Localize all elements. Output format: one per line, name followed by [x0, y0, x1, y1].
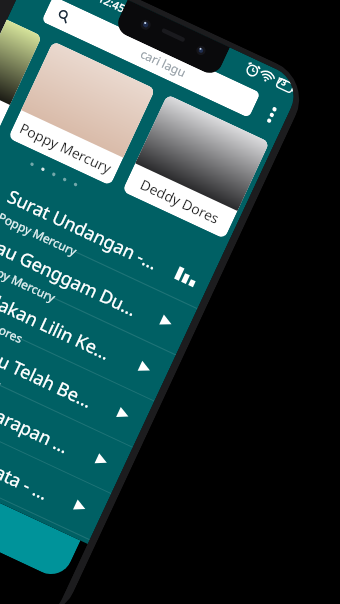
- button[interactable]: Kau Genggam Dunia - Poppy Mercury: [0, 184, 198, 354]
- staticText: cari lagu: [138, 45, 189, 80]
- button[interactable]: Hilang Permata - Deddy Dores: [0, 368, 111, 539]
- button[interactable]: Deddy Dores: [122, 94, 270, 239]
- button[interactable]: Surat Undangan - Poppy Mercury: [0, 137, 219, 308]
- staticText: Kau Genggam Dunia - Poppy Mercury: [0, 230, 142, 323]
- staticText: Sebuah Harapan - Deddy Dores: [0, 369, 77, 461]
- staticText: Poppy Mercury: [17, 118, 115, 178]
- staticText: Hilang Permata - Deddy Dores: [0, 415, 56, 507]
- button[interactable]: Iwan Fals: [0, 19, 42, 133]
- staticText: Poppy Mercury: [0, 208, 80, 259]
- staticText: Deddy Dores: [0, 347, 4, 392]
- staticText: Poppy Mercury: [0, 255, 58, 305]
- button[interactable]: 00:03 /: [0, 419, 81, 581]
- staticText: Surat Undangan - Poppy Mercury: [3, 184, 164, 276]
- staticText: 12:45: [96, 0, 128, 16]
- staticText: Cintamu Telah Berlalu - Deddy Dores: [0, 323, 99, 415]
- staticText: Deddy Dores: [0, 301, 26, 346]
- staticText: Nyalakan Lilin Kecil - Deddy Dores: [0, 276, 120, 369]
- button[interactable]: More options: [259, 99, 285, 130]
- button[interactable]: cari lagu: [41, 0, 261, 118]
- button[interactable]: Nyalakan Lilin Kecil - Deddy Dores: [0, 230, 176, 401]
- button[interactable]: Cintamu Telah Berlalu - Deddy Dores: [0, 276, 155, 447]
- staticText: 73: [276, 74, 289, 88]
- button[interactable]: Sebuah Harapan - Deddy Dores: [0, 322, 133, 493]
- button[interactable]: Poppy Mercury: [8, 41, 155, 186]
- staticText: Deddy Dores: [137, 175, 222, 228]
